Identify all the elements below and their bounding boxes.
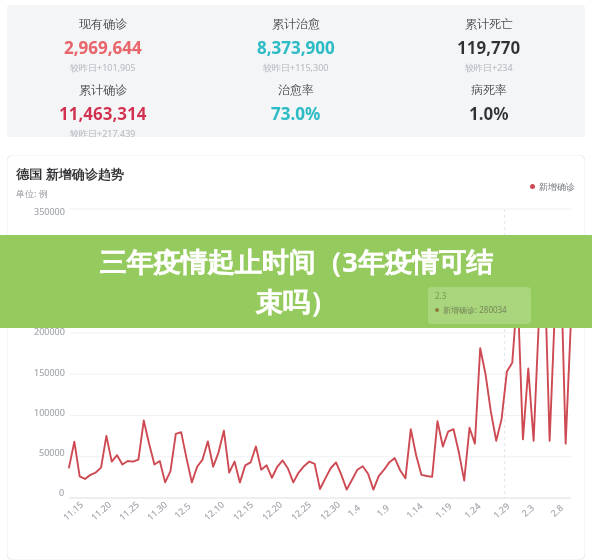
staticText: 单位: 例 — [16, 187, 48, 199]
staticText: 200000 — [34, 325, 65, 337]
staticText: 新增确诊: 280034 — [443, 304, 507, 315]
staticText: 2.3 — [435, 290, 447, 301]
button[interactable]: 累计确诊 — [7, 82, 199, 137]
staticText: 1.9 — [374, 501, 391, 519]
button[interactable]: 德国 新增确诊趋势 — [7, 155, 585, 560]
staticText: 2.8 — [548, 501, 565, 519]
staticText: 现有确诊 — [79, 16, 127, 31]
staticText: 12.5 — [171, 499, 193, 520]
staticText: 治愈率 — [278, 82, 314, 97]
button[interactable]: 累计死亡 — [392, 16, 585, 73]
staticText: 12.30 — [317, 497, 343, 522]
staticText: 0 — [59, 486, 65, 498]
staticText: 新增确诊 — [539, 181, 575, 192]
button[interactable]: 新增确诊 — [530, 181, 575, 192]
staticText: 12.15 — [230, 497, 256, 522]
button[interactable]: 现有确诊 — [7, 16, 199, 73]
staticText: 较昨日+234 — [465, 61, 513, 73]
staticText: 1.14 — [403, 499, 425, 520]
staticText: 较昨日+101,905 — [70, 61, 136, 73]
staticText: 100000 — [34, 406, 65, 418]
staticText: 累计治愈 — [272, 16, 320, 31]
staticText: 119,770 — [457, 36, 521, 59]
staticText: 12.25 — [288, 497, 314, 522]
staticText: 11.30 — [144, 497, 170, 522]
staticText: 12.20 — [259, 497, 285, 522]
staticText: 11,463,314 — [59, 102, 147, 125]
button[interactable]: 治愈率 — [199, 82, 392, 125]
staticText: 2.3 — [519, 501, 536, 519]
staticText: 8,373,900 — [257, 36, 335, 59]
staticText: 1.24 — [461, 499, 483, 520]
button[interactable]: 2.3 — [428, 287, 531, 324]
staticText: 73.0% — [271, 102, 321, 125]
staticText: 较昨日+115,300 — [263, 61, 329, 73]
staticText: 350000 — [34, 205, 65, 217]
staticText: 11.15 — [60, 497, 86, 522]
staticText: 11.25 — [116, 497, 142, 522]
staticText: 1.19 — [432, 499, 454, 520]
staticText: 德国 新增确诊趋势 — [16, 165, 124, 183]
staticText: 累计死亡 — [465, 16, 513, 31]
staticText: 较昨日+217,439 — [70, 127, 136, 137]
button[interactable]: 病死率 — [392, 82, 585, 125]
staticText: 累计确诊 — [79, 82, 127, 97]
staticText: 三年疫情起止时间（3年疫情可结 束吗） — [30, 243, 562, 320]
button[interactable]: 累计治愈 — [199, 16, 392, 73]
staticText: 病死率 — [471, 82, 507, 97]
staticText: 1.29 — [490, 499, 512, 520]
button[interactable]: 现有确诊 — [7, 5, 585, 137]
staticText: 1.0% — [469, 102, 509, 125]
staticText: 150000 — [34, 366, 65, 378]
staticText: 50000 — [39, 446, 65, 458]
staticText: 1.4 — [345, 501, 362, 519]
staticText: 12.10 — [201, 497, 227, 522]
staticText: 2,969,644 — [64, 36, 142, 59]
staticText: 11.20 — [88, 497, 114, 522]
